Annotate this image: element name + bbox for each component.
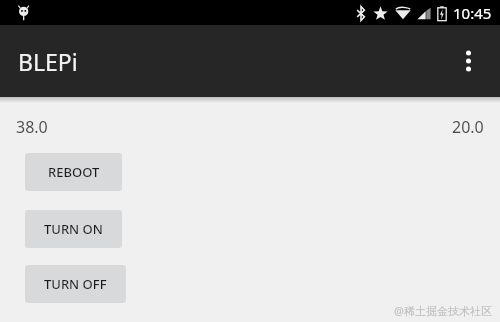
staticText: TURN OFF [44, 275, 107, 293]
staticText: 10:45 [453, 3, 492, 23]
staticText: 20.0 [452, 116, 484, 138]
button[interactable]: TURN OFF [25, 265, 126, 303]
staticText: 38.0 [16, 116, 48, 138]
staticText: REBOOT [48, 163, 100, 181]
staticText: BLEPi [18, 46, 78, 77]
button[interactable]: TURN ON [25, 210, 122, 248]
staticText: @稀土掘金技术社区 [394, 303, 492, 318]
button[interactable]: REBOOT [25, 153, 122, 191]
staticText: TURN ON [44, 220, 103, 238]
button[interactable]: More options [444, 37, 492, 85]
